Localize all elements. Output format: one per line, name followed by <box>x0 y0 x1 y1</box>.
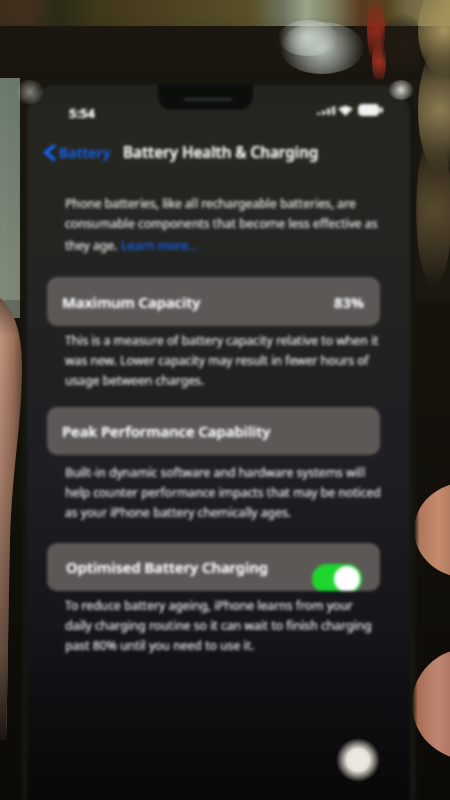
button[interactable]: Maximum Capacity <box>47 277 380 326</box>
staticText: Battery <box>59 143 111 162</box>
staticText: Phone batteries, like all rechargeable b… <box>65 195 356 215</box>
button[interactable]: Battery <box>45 141 111 163</box>
staticText: past 80% until you need to use it. <box>65 637 255 657</box>
button[interactable]: Optimised Battery Charging toggle <box>312 564 362 591</box>
staticText: daily charging routine so it can wait to… <box>65 617 372 637</box>
staticText: Optimised Battery Charging <box>66 557 268 577</box>
button[interactable]: Peak Performance Capability <box>47 407 380 455</box>
staticText: Maximum Capacity <box>62 292 201 312</box>
staticText: 5:54 <box>69 104 95 122</box>
staticText: This is a measure of battery capacity re… <box>65 332 379 352</box>
staticText: they age. <box>65 237 121 254</box>
staticText: Built-in dynamic software and hardware s… <box>65 464 366 484</box>
staticText: Battery Health & Charging <box>123 142 319 163</box>
button[interactable]: Optimised Battery Charging <box>47 543 380 591</box>
staticText: usage between charges. <box>65 372 205 392</box>
staticText: To reduce battery ageing, iPhone learns … <box>65 597 353 617</box>
staticText: 83% <box>334 292 364 312</box>
staticText: Peak Performance Capability <box>62 421 271 441</box>
staticText: help counter performance impacts that ma… <box>65 484 381 504</box>
staticText: consumable components that become less e… <box>65 215 378 235</box>
button[interactable]: Learn more... <box>121 237 199 254</box>
staticText: was new. Lower capacity may result in fe… <box>65 352 369 372</box>
staticText: as your iPhone battery chemically ages. <box>65 504 292 524</box>
